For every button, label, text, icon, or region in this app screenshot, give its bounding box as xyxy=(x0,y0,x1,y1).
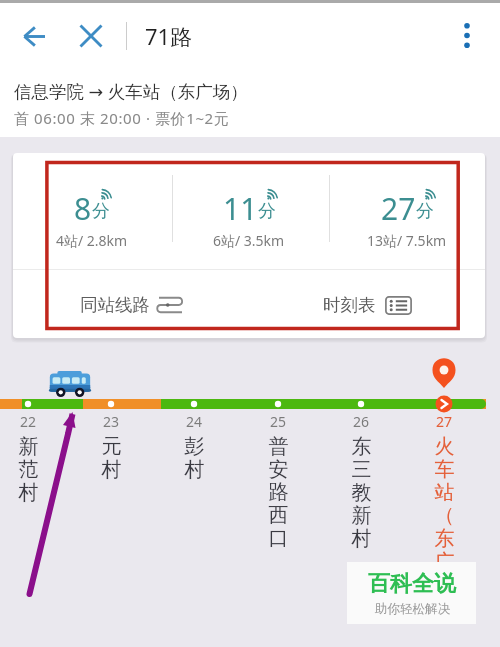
button[interactable]: 同站线路 xyxy=(13,270,249,338)
button[interactable]: 11 xyxy=(170,153,327,269)
staticText: 71路 xyxy=(145,21,193,51)
staticText: 13站/ 7.5km xyxy=(367,231,447,250)
staticText: 助你轻松解决 xyxy=(375,601,450,617)
staticText: 时刻表 xyxy=(323,294,376,316)
staticText: 分 xyxy=(416,200,434,223)
staticText: 新范村 xyxy=(18,434,39,505)
staticText: 23 xyxy=(103,412,120,431)
staticText: 6站/ 3.5km xyxy=(213,231,285,250)
staticText: 27 xyxy=(436,412,453,431)
staticText: 同站线路 xyxy=(80,294,150,316)
staticText: 分 xyxy=(92,200,110,223)
staticText: 火车站（东广场） xyxy=(434,434,455,620)
staticText: 彭村 xyxy=(184,434,205,482)
staticText: 4站/ 2.8km xyxy=(56,231,128,250)
button[interactable]: 23 xyxy=(94,412,128,482)
staticText: 26 xyxy=(353,412,370,431)
staticText: 22 xyxy=(20,412,37,431)
button[interactable]: 27 xyxy=(427,412,461,620)
staticText: 8 xyxy=(74,188,92,229)
staticText: 27 xyxy=(381,188,416,229)
staticText: 普安路西口 xyxy=(268,434,289,551)
button[interactable]: 时刻表 xyxy=(249,270,485,338)
button[interactable]: More options xyxy=(443,12,490,59)
staticText: 元村 xyxy=(101,434,122,482)
staticText: 首 06:00 末 20:00 · 票价1~2元 xyxy=(14,108,230,128)
staticText: 分 xyxy=(258,200,276,223)
button[interactable]: 27 xyxy=(328,153,485,269)
button[interactable]: 8 xyxy=(13,153,170,269)
button[interactable]: 25 xyxy=(261,412,295,551)
button[interactable]: 24 xyxy=(177,412,211,482)
button[interactable]: Back xyxy=(10,12,58,60)
button[interactable]: 22 xyxy=(11,412,45,505)
staticText: 24 xyxy=(186,412,203,431)
button[interactable]: 26 xyxy=(344,412,378,551)
staticText: 11 xyxy=(223,188,258,229)
staticText: 东三教新村 xyxy=(351,434,372,551)
staticText: 百科全说 xyxy=(368,570,456,598)
staticText: 信息学院 → 火车站（东广场） xyxy=(14,79,248,103)
staticText: 25 xyxy=(270,412,287,431)
button[interactable]: Close xyxy=(67,12,115,60)
